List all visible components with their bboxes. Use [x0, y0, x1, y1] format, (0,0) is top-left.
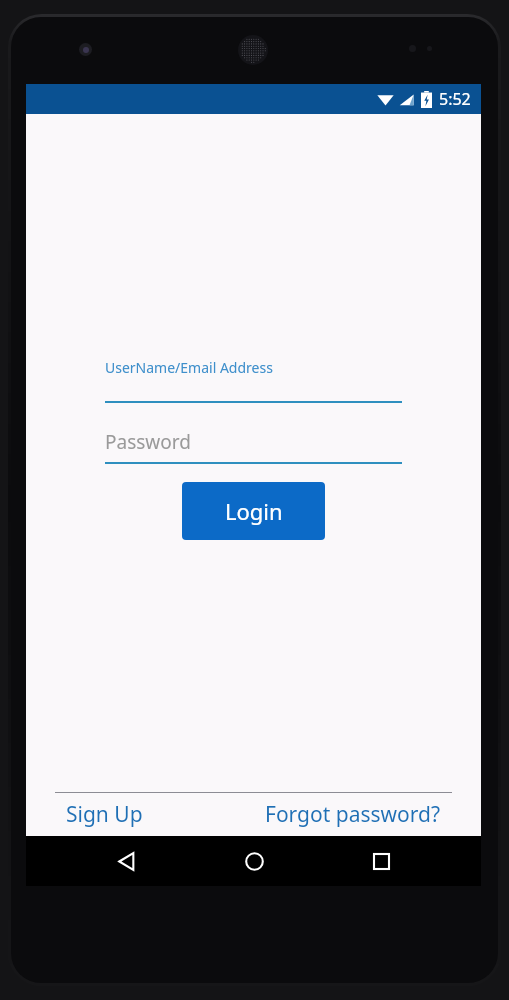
- button[interactable]: Login: [182, 482, 325, 540]
- staticText: 5:52: [439, 88, 471, 110]
- button[interactable]: Forgot password?: [265, 793, 441, 836]
- button[interactable]: Back: [99, 836, 153, 886]
- button[interactable]: UserName/Email Address: [105, 358, 402, 403]
- button[interactable]: Sign Up: [66, 793, 143, 836]
- button[interactable]: Recent apps: [354, 836, 408, 886]
- staticText: Forgot password?: [265, 800, 441, 829]
- staticText: Sign Up: [66, 800, 143, 829]
- button[interactable]: Home: [227, 836, 281, 886]
- staticText: UserName/Email Address: [105, 358, 273, 377]
- button[interactable]: Password: [105, 429, 402, 464]
- staticText: Login: [225, 496, 283, 526]
- staticText: Password: [105, 429, 191, 455]
